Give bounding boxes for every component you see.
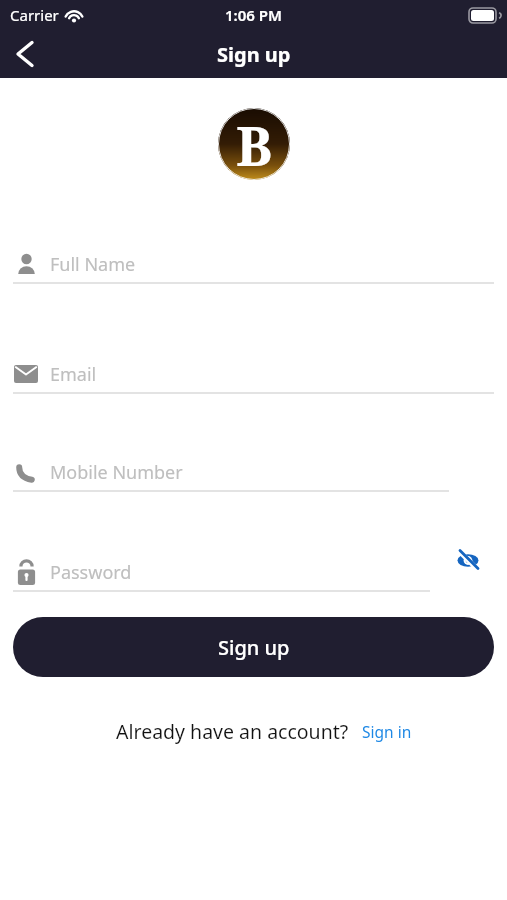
staticText: Carrier [10, 5, 59, 25]
staticText: Mobile Number [50, 460, 183, 485]
button[interactable]: Full Name [13, 249, 507, 284]
button[interactable] [454, 557, 482, 564]
staticText: B [236, 108, 273, 178]
staticText: Already have an account? [116, 718, 349, 745]
button[interactable] [3, 32, 47, 76]
staticText: Password [50, 560, 132, 585]
button[interactable]: Sign up [13, 617, 494, 677]
button[interactable]: Sign in [362, 721, 412, 742]
button[interactable]: Password [13, 557, 507, 592]
staticText: Full Name [50, 252, 136, 277]
button[interactable]: Email [13, 359, 507, 394]
staticText: 1:06 PM [225, 5, 282, 25]
staticText: Email [50, 362, 97, 387]
staticText: Sign up [217, 41, 291, 68]
staticText: Sign up [218, 634, 290, 661]
button[interactable]: Mobile Number [13, 457, 507, 492]
